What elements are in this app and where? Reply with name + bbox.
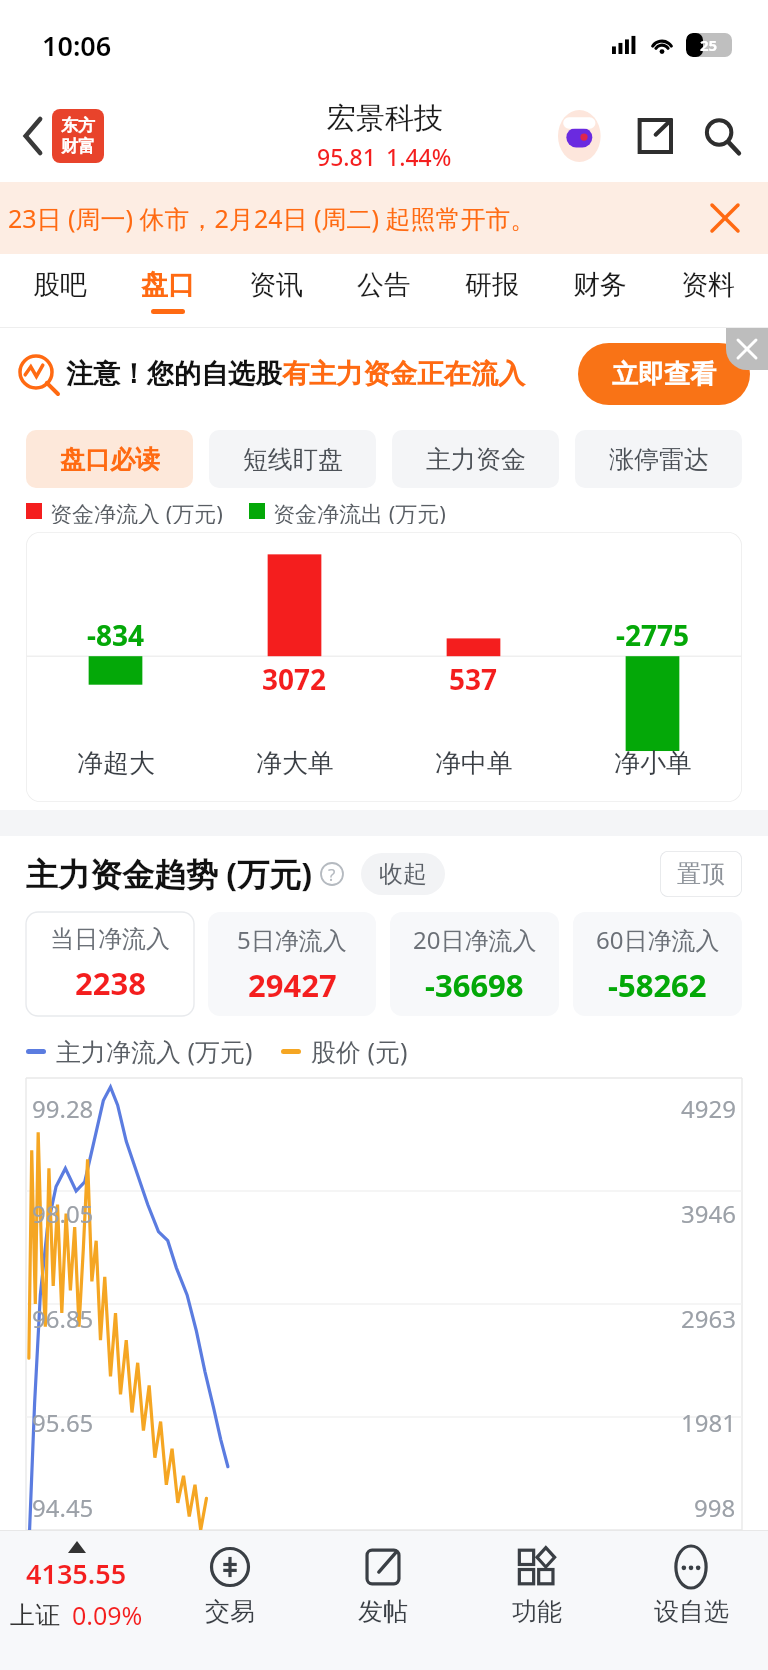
staticText: 95.65	[32, 1406, 94, 1439]
button[interactable]: Help	[317, 859, 347, 889]
staticText: 60日净流入	[596, 923, 720, 956]
staticText: 立即查看	[612, 358, 716, 391]
button[interactable]: 4135.55	[0, 1531, 153, 1641]
button[interactable]: 短线盯盘	[209, 430, 376, 488]
button[interactable]: 功能	[460, 1531, 614, 1641]
staticText: 净小单	[614, 747, 692, 780]
button[interactable]: 60日净流入	[573, 912, 742, 1016]
staticText: 20日净流入	[413, 923, 537, 956]
staticText: 2238	[75, 962, 146, 1004]
staticText: 设自选	[654, 1596, 729, 1627]
staticText: 95.81	[317, 141, 376, 172]
staticText: 537	[449, 660, 498, 698]
staticText: 东方	[61, 115, 95, 136]
button[interactable]: 交易	[153, 1531, 306, 1641]
button[interactable]: 涨停雷达	[575, 430, 742, 488]
staticText: 998	[694, 1491, 736, 1524]
staticText: -58262	[608, 964, 707, 1006]
staticText: 主力资金趋势 (万元)	[26, 852, 313, 896]
staticText: 公告	[357, 268, 411, 302]
staticText: 99.28	[32, 1092, 94, 1125]
staticText: -36698	[425, 964, 524, 1006]
staticText: 净中单	[435, 747, 513, 780]
staticText: 上证	[10, 1600, 60, 1631]
staticText: 1981	[681, 1406, 736, 1439]
staticText: -834	[87, 616, 145, 654]
staticText: 1.44%	[386, 141, 452, 172]
button[interactable]: 盘口	[114, 254, 222, 328]
staticText: -2775	[616, 616, 690, 654]
staticText: 发帖	[358, 1596, 408, 1627]
staticText: 3072	[262, 660, 327, 698]
staticText: 短线盯盘	[243, 444, 343, 475]
button[interactable]: 发帖	[306, 1531, 460, 1641]
button[interactable]: 盘口必读	[26, 430, 193, 488]
button[interactable]: 立即查看	[578, 343, 750, 405]
staticText: 股吧	[33, 268, 87, 302]
staticText: 交易	[205, 1596, 255, 1627]
staticText: 财富	[61, 136, 95, 157]
button[interactable]: Share	[628, 109, 682, 163]
staticText: ?	[328, 863, 336, 886]
staticText: 股价 (元)	[311, 1034, 408, 1068]
button[interactable]: 设自选	[614, 1531, 768, 1641]
staticText: 置顶	[677, 859, 725, 889]
staticText: 98.05	[32, 1197, 94, 1230]
button[interactable]: 研报	[438, 254, 546, 328]
button[interactable]: Back	[8, 110, 60, 162]
staticText: 4135.55	[26, 1555, 127, 1592]
button[interactable]: 5日净流入	[208, 912, 376, 1016]
button[interactable]: Search	[694, 108, 750, 164]
staticText: 当日净流入	[50, 924, 170, 954]
staticText: 资金净流出 (万元)	[273, 498, 446, 524]
button[interactable]: 股吧	[6, 254, 114, 328]
button[interactable]: 资讯	[222, 254, 330, 328]
staticText: 净大单	[256, 747, 334, 780]
button[interactable]: 财务	[546, 254, 654, 328]
button[interactable]: 东方	[52, 109, 104, 163]
button[interactable]: 公告	[330, 254, 438, 328]
staticText: 有主力资金正在流入	[282, 357, 525, 391]
staticText: 研报	[465, 268, 519, 302]
staticText: 2963	[681, 1302, 736, 1335]
button[interactable]: 收起	[379, 853, 427, 895]
staticText: 29427	[248, 964, 337, 1006]
staticText: 盘口	[141, 268, 195, 302]
button[interactable]: 资料	[654, 254, 762, 328]
button[interactable]: Close ad	[726, 328, 768, 370]
staticText: 3946	[681, 1197, 736, 1230]
button[interactable]: 当日净流入	[26, 912, 194, 1016]
button[interactable]: Assistant	[556, 108, 612, 164]
staticText: 宏景科技	[327, 100, 443, 137]
staticText: 4929	[681, 1092, 736, 1125]
button[interactable]: 置顶	[660, 851, 742, 897]
staticText: 10:06	[42, 27, 112, 64]
staticText: 资料	[681, 268, 735, 302]
staticText: 25	[700, 35, 718, 55]
button[interactable]: Close notice	[698, 191, 752, 245]
staticText: 收起	[379, 859, 427, 889]
staticText: 功能	[512, 1596, 562, 1627]
staticText: 资讯	[249, 268, 303, 302]
staticText: 5日净流入	[237, 923, 347, 956]
button[interactable]: 主力资金	[392, 430, 559, 488]
staticText: 注意！您的自选股	[66, 357, 282, 391]
staticText: 94.45	[32, 1491, 94, 1524]
staticText: 盘口必读	[60, 444, 160, 475]
staticText: 0.09%	[72, 1598, 143, 1632]
staticText: 96.85	[32, 1302, 94, 1335]
staticText: 涨停雷达	[609, 444, 709, 475]
staticText: 财务	[573, 268, 627, 302]
staticText: 净超大	[77, 747, 155, 780]
staticText: 资金净流入 (万元)	[50, 498, 223, 524]
staticText: 23日 (周一) 休市，2月24日 (周二) 起照常开市。	[8, 201, 536, 235]
button[interactable]: 20日净流入	[390, 912, 559, 1016]
staticText: 主力资金	[426, 444, 526, 475]
staticText: 主力净流入 (万元)	[56, 1034, 253, 1068]
